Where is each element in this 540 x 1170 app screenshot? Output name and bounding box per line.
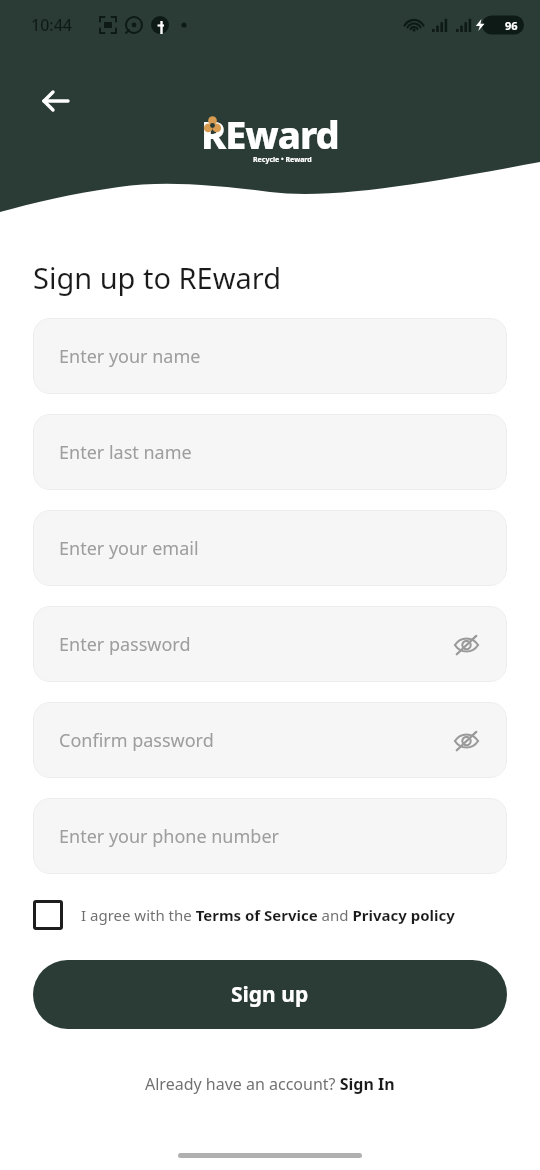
button[interactable]: Enter your phone number [33,798,507,874]
staticText: I agree with the Terms of Service and Pr… [81,905,455,925]
staticText: 10:44 [31,14,72,36]
button[interactable]: Toggle password visibility [449,723,483,757]
button[interactable]: Enter your name [33,318,507,394]
staticText: Sign up [231,980,309,1009]
button[interactable]: Already have an account? Sign In [145,1073,395,1095]
button[interactable]: Back [33,78,79,124]
button[interactable]: Confirm password [33,702,507,778]
staticText: Enter last name [59,440,192,465]
button[interactable]: I agree with the Terms of Service and Pr… [33,900,507,930]
button[interactable]: Enter your email [33,510,507,586]
staticText: Sign up to REward [33,258,282,297]
staticText: Enter your name [59,344,201,369]
staticText: REward [201,108,339,160]
staticText: Enter password [59,632,191,657]
button[interactable]: Enter last name [33,414,507,490]
button[interactable]: Toggle password visibility [449,627,483,661]
staticText: 96 [505,18,518,33]
staticText: Enter your phone number [59,824,279,849]
staticText: Enter your email [59,536,199,561]
button[interactable]: Enter password [33,606,507,682]
staticText: Confirm password [59,728,214,753]
staticText: Recycle • Reward [253,155,312,165]
button[interactable]: Sign up [33,960,507,1029]
